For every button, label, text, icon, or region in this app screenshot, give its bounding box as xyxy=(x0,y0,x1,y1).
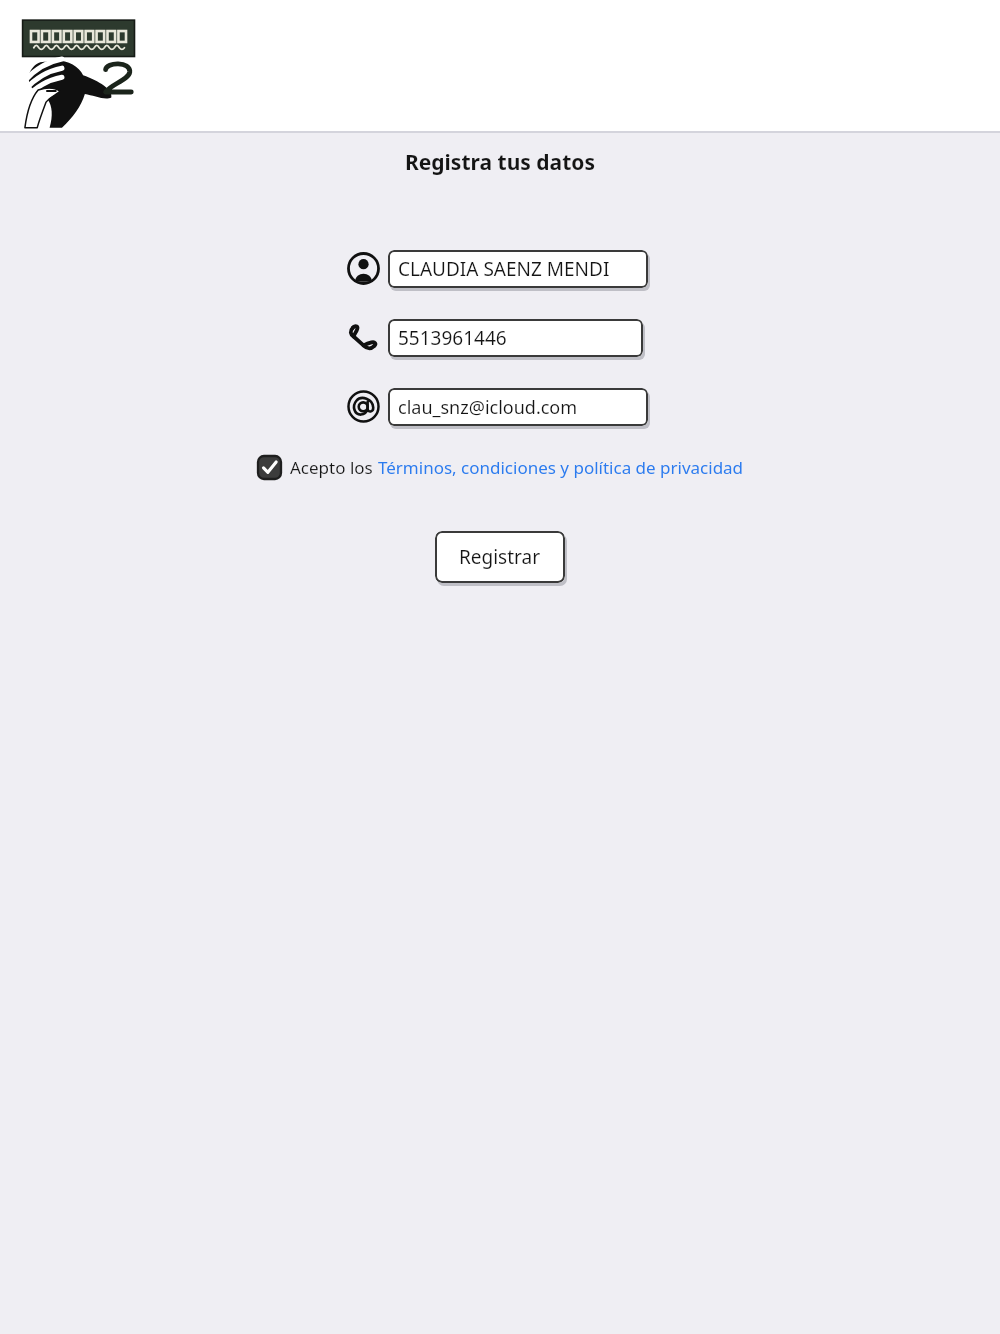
button[interactable]: Accept terms checkbox xyxy=(258,456,744,479)
button[interactable]: 5513961446 xyxy=(388,319,643,357)
staticText: clau_snz@icloud.com xyxy=(398,395,578,420)
staticText: Acepto los xyxy=(290,456,378,479)
button[interactable]: Phone xyxy=(346,320,381,355)
staticText: Registra tus datos xyxy=(405,148,595,177)
button[interactable]: Términos, condiciones y política de priv… xyxy=(378,456,744,479)
staticText: Registrar xyxy=(459,544,541,570)
staticText: CLAUDIA SAENZ MENDI xyxy=(398,256,610,282)
button[interactable]: Email xyxy=(346,389,381,424)
button[interactable]: Eduardo's hair and nail studio logo xyxy=(22,19,138,131)
staticText: 5513961446 xyxy=(398,325,507,351)
button[interactable]: Registrar xyxy=(435,531,565,583)
button[interactable]: clau_snz@icloud.com xyxy=(388,388,648,426)
other: Accept terms checkbox xyxy=(258,456,281,479)
button[interactable]: Name xyxy=(346,251,381,286)
button[interactable]: CLAUDIA SAENZ MENDI xyxy=(388,250,648,288)
